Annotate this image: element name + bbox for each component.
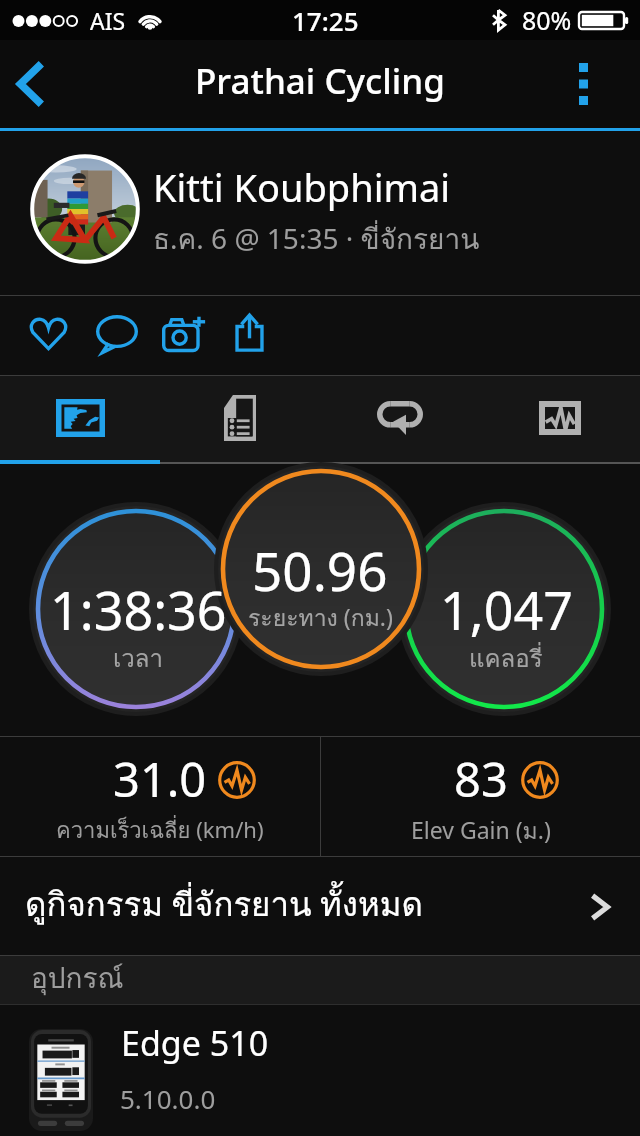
staticText: 50.96 bbox=[252, 534, 388, 606]
button[interactable]: Back bbox=[0, 40, 62, 128]
staticText: ระยะทาง (กม.) bbox=[248, 600, 393, 637]
button[interactable]: Elev Gain (ม.) bbox=[321, 737, 640, 856]
button[interactable]: Time 1:38:36 bbox=[0, 574, 298, 683]
staticText: Edge 510 bbox=[121, 1020, 269, 1066]
button[interactable]: ความเร็วเฉลี่ย (km/h) bbox=[0, 737, 320, 856]
staticText: 5.10.0.0 bbox=[120, 1081, 216, 1116]
button[interactable]: Distance 50.96 km bbox=[160, 534, 480, 643]
staticText: Kitti Koubphimai bbox=[153, 161, 451, 213]
button[interactable]: Comment bbox=[88, 305, 146, 363]
staticText: ความเร็วเฉลี่ย (km/h) bbox=[56, 813, 264, 848]
staticText: ดูกิจกรรม ขี่จักรยาน ทั้งหมด bbox=[25, 878, 423, 930]
button[interactable]: Charts tab bbox=[480, 376, 640, 460]
staticText: 1:38:36 bbox=[50, 574, 227, 645]
button[interactable]: Edge 510 bbox=[0, 1005, 640, 1136]
staticText: 80% bbox=[522, 3, 572, 37]
button[interactable]: Add photo bbox=[155, 305, 213, 363]
staticText: ธ.ค. 6 @ 15:35 · ขี่จักรยาน bbox=[153, 217, 480, 262]
button[interactable]: ดูกิจกรรม ขี่จักรยาน ทั้งหมด bbox=[0, 857, 640, 955]
staticText: 17:25 bbox=[292, 3, 359, 38]
button[interactable]: Map tab bbox=[0, 376, 160, 460]
button[interactable]: Laps tab bbox=[320, 376, 480, 460]
staticText: เวลา bbox=[113, 639, 163, 677]
staticText: อุปกรณ์ bbox=[31, 956, 124, 1001]
staticText: 1,047 bbox=[440, 574, 573, 645]
staticText: AIS bbox=[90, 5, 126, 36]
staticText: แคลอรี่ bbox=[469, 639, 543, 677]
button[interactable]: Share bbox=[220, 304, 278, 362]
button[interactable]: Calories 1,047 bbox=[346, 574, 640, 683]
button[interactable]: Like bbox=[19, 305, 77, 363]
button[interactable]: More options bbox=[560, 40, 640, 128]
staticText: Prathai Cycling bbox=[195, 57, 445, 105]
staticText: 83 bbox=[454, 747, 508, 811]
button[interactable]: Details tab bbox=[160, 376, 320, 460]
button[interactable]: Kitti Koubphimai bbox=[0, 131, 640, 295]
staticText: 31.0 bbox=[113, 747, 207, 811]
staticText: Elev Gain (ม.) bbox=[411, 813, 551, 850]
